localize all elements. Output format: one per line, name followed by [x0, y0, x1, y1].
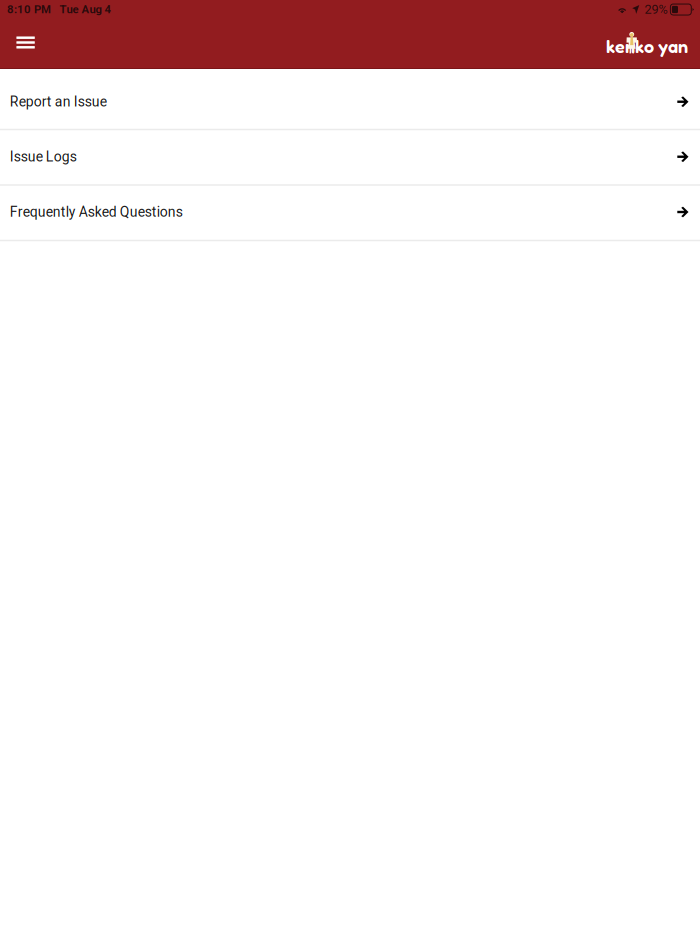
- button[interactable]: Frequently Asked Questions: [0, 185, 700, 241]
- staticText: Tue Aug 4: [60, 3, 112, 16]
- staticText: 8:10 PM: [7, 3, 51, 16]
- staticText: Report an Issue: [10, 93, 107, 110]
- staticText: kenko yan: [606, 35, 688, 57]
- button[interactable]: Issue Logs: [0, 130, 700, 185]
- button[interactable]: Menu: [0, 21, 49, 68]
- staticText: Frequently Asked Questions: [10, 204, 183, 220]
- staticText: 29%: [644, 2, 667, 17]
- staticText: Issue Logs: [10, 148, 77, 165]
- button[interactable]: Report an Issue: [0, 69, 700, 130]
